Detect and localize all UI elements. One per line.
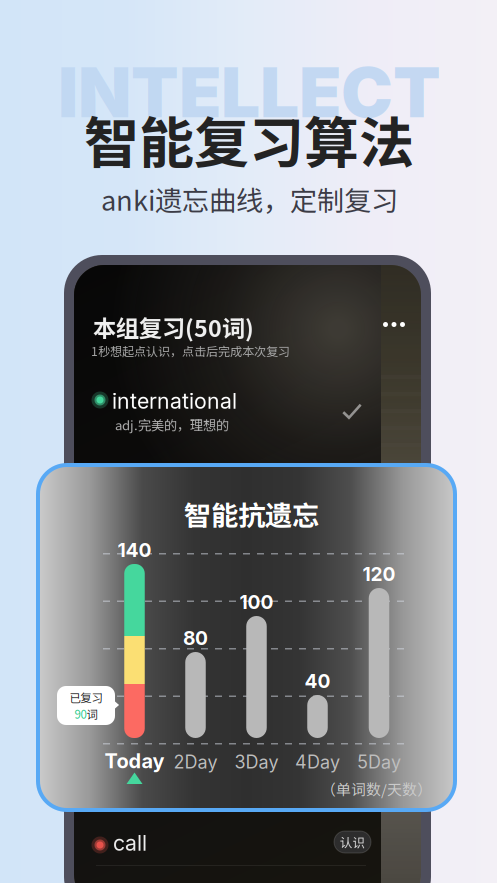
staticText: 140: [117, 538, 151, 562]
staticText: Today: [104, 749, 164, 773]
staticText: adj.完美的，理想的: [115, 415, 229, 434]
staticText: 智能复习算法: [84, 99, 414, 179]
staticText: INTELLECT: [58, 50, 441, 134]
staticText: 40: [304, 669, 330, 693]
button[interactable]: More options: [374, 313, 414, 336]
staticText: 认识: [339, 833, 365, 851]
staticText: 已复习: [69, 689, 102, 705]
staticText: 80: [183, 626, 208, 650]
staticText: 1秒想起点认识，点击后完成本次复习: [91, 342, 290, 360]
button[interactable]: international: [74, 386, 374, 452]
staticText: 智能抗遗忘: [184, 494, 319, 534]
staticText: 本组复习(50词): [93, 310, 254, 344]
staticText: 100: [239, 590, 273, 614]
staticText: call: [113, 830, 147, 856]
staticText: 90: [74, 705, 86, 722]
staticText: anki遗忘曲线，定制复习: [101, 179, 398, 218]
staticText: 5Day: [357, 751, 401, 773]
staticText: 4Day: [295, 751, 340, 773]
staticText: 3Day: [234, 751, 278, 773]
staticText: international: [112, 388, 237, 414]
button[interactable]: call: [74, 820, 394, 874]
staticText: （单词数/天数）: [321, 778, 432, 800]
staticText: 词: [86, 705, 97, 722]
staticText: 2Day: [173, 751, 217, 773]
staticText: 120: [362, 562, 395, 586]
